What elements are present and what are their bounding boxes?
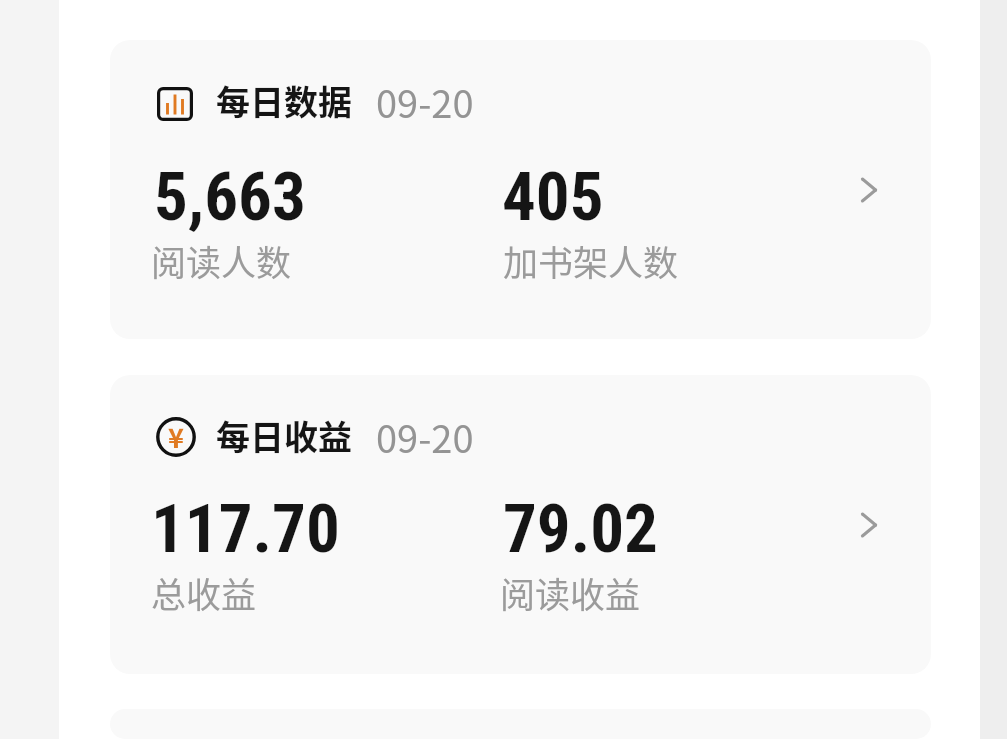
staticText: 每日收益 xyxy=(216,411,352,460)
staticText: 每日数据 xyxy=(216,76,352,125)
other: 数据 xyxy=(157,87,193,121)
staticText: 09-20 xyxy=(376,74,474,129)
button[interactable]: 查看详情 xyxy=(851,505,891,545)
staticText: 5,663 xyxy=(154,158,306,237)
button[interactable]: 数据 xyxy=(110,40,931,339)
staticText: 117.70 xyxy=(151,490,340,569)
staticText: 加书架人数 xyxy=(503,235,679,286)
button[interactable]: 查看详情 xyxy=(851,170,891,210)
staticText: 09-20 xyxy=(376,409,474,464)
staticText: 405 xyxy=(502,158,604,237)
staticText: 阅读收益 xyxy=(500,567,641,618)
button[interactable]: 收益 xyxy=(110,375,931,674)
staticText: ¥ xyxy=(168,417,184,456)
staticText: 总收益 xyxy=(151,567,257,618)
staticText: 阅读人数 xyxy=(151,235,292,286)
staticText: 79.02 xyxy=(503,490,658,569)
other: 收益 xyxy=(156,417,196,457)
